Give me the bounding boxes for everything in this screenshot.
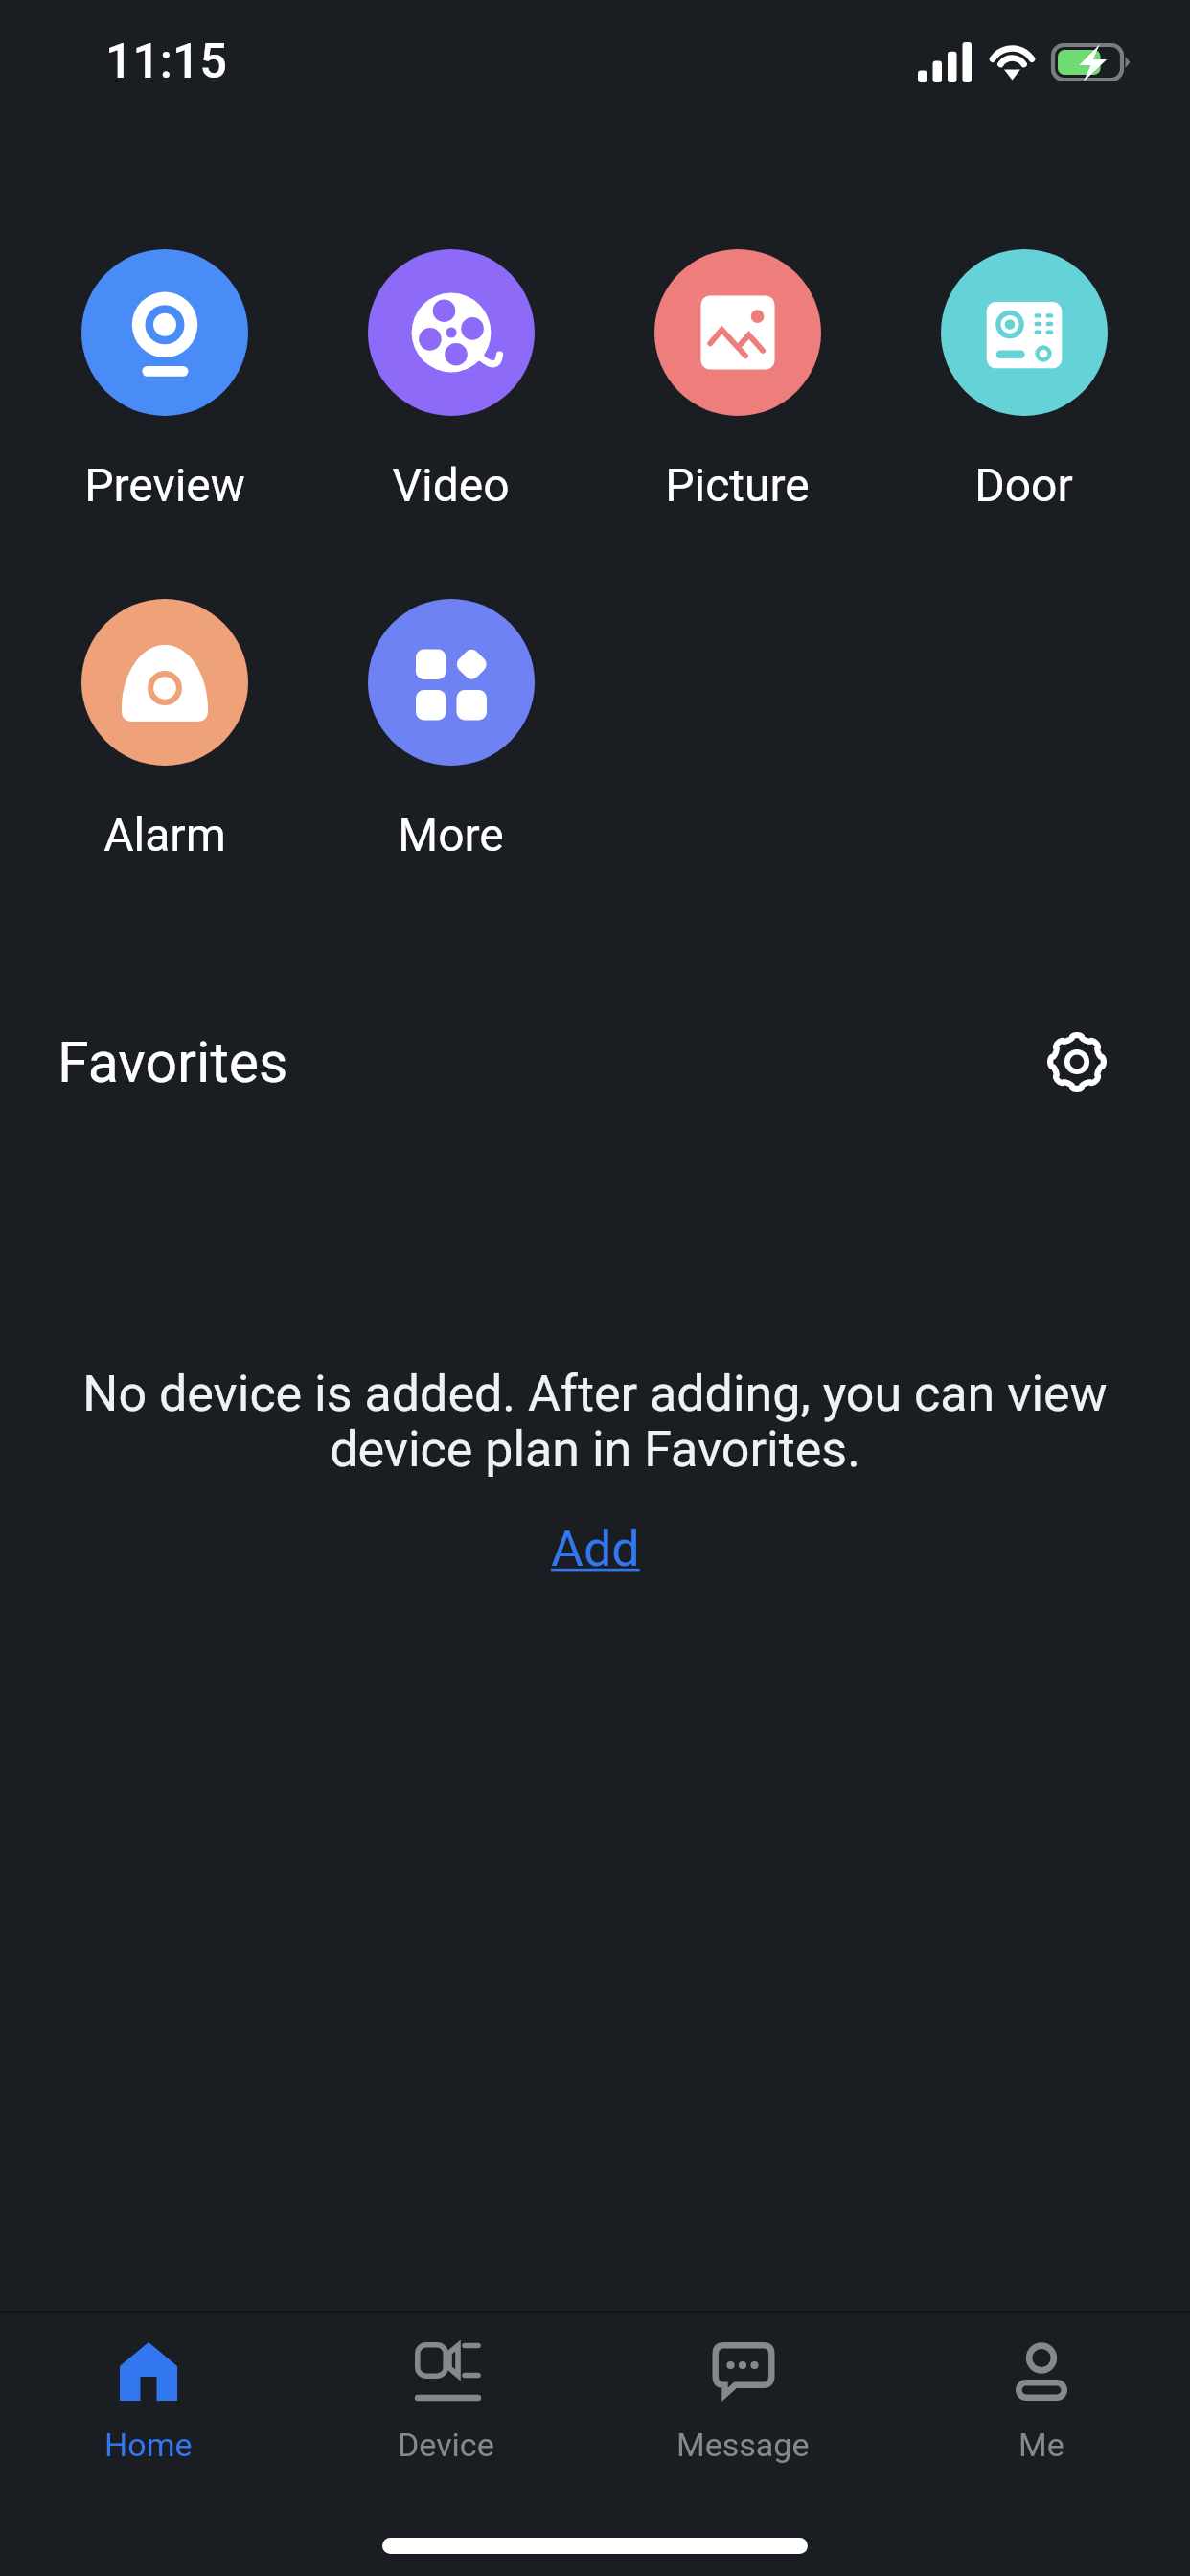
button[interactable]: More bbox=[308, 599, 594, 862]
staticText: Video bbox=[392, 458, 510, 512]
button[interactable]: Preview bbox=[21, 249, 308, 512]
staticText: Favorites bbox=[57, 1029, 288, 1095]
button[interactable]: Me bbox=[892, 2313, 1190, 2486]
button[interactable]: Door bbox=[881, 249, 1167, 512]
button[interactable]: Add bbox=[551, 1520, 640, 1578]
button[interactable]: Settings bbox=[1035, 1020, 1119, 1104]
button[interactable]: Home bbox=[0, 2313, 297, 2486]
staticText: Picture bbox=[665, 458, 810, 512]
staticText: Home bbox=[104, 2426, 193, 2464]
staticText: More bbox=[398, 808, 504, 862]
staticText: Door bbox=[974, 458, 1073, 512]
button[interactable]: Alarm bbox=[21, 599, 308, 862]
staticText: Message bbox=[676, 2426, 810, 2464]
staticText: Alarm bbox=[103, 808, 226, 862]
staticText: 11:15 bbox=[105, 34, 227, 90]
button[interactable]: Video bbox=[308, 249, 594, 512]
button[interactable]: Device bbox=[297, 2313, 594, 2486]
staticText: Preview bbox=[84, 458, 245, 512]
staticText: No device is added. After adding, you ca… bbox=[57, 1365, 1133, 1479]
staticText: Add bbox=[551, 1520, 640, 1578]
staticText: Me bbox=[1018, 2426, 1064, 2464]
button[interactable]: Picture bbox=[594, 249, 881, 512]
button[interactable]: Message bbox=[594, 2313, 892, 2486]
staticText: Device bbox=[398, 2426, 494, 2464]
